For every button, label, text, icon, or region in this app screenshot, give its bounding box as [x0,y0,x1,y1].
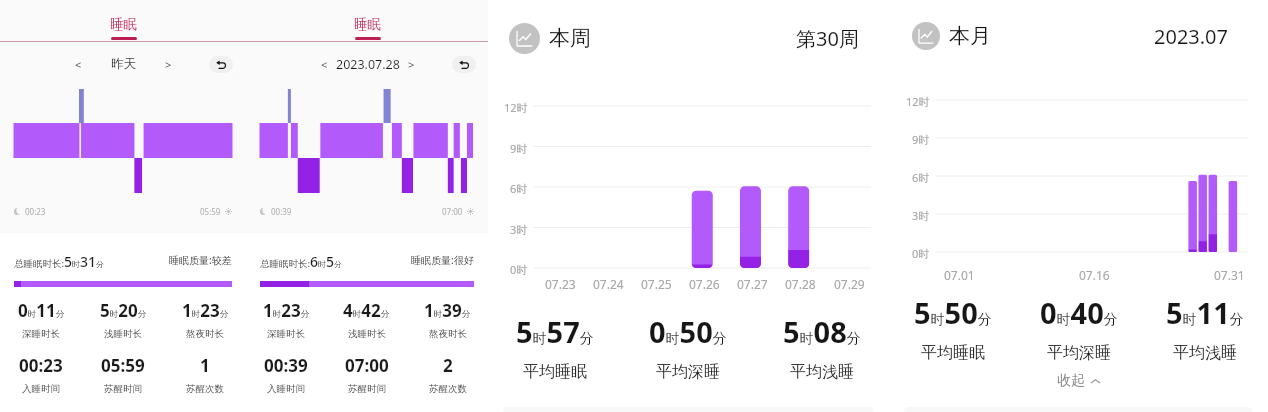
staticText: 深睡时长 [267,328,305,340]
staticText: 07.26 [689,276,720,290]
staticText: 睡眠 [354,16,381,33]
staticText: 5时57分 [516,312,594,351]
staticText: 本月 [949,23,991,49]
staticText: 收起 [1057,372,1085,390]
button[interactable]: Previous day [70,56,86,72]
staticText: 5时50分 [914,293,992,332]
button[interactable]: Next day [403,56,419,72]
staticText: 熬夜时长 [429,328,467,340]
staticText: 平均睡眠 [921,343,985,363]
staticText: 07.31 [1214,267,1245,281]
staticText: 睡眠 [110,16,137,33]
staticText: 苏醒时间 [104,383,142,395]
staticText: 睡眠质量:很好 [411,253,474,267]
staticText: 入睡时间 [22,383,60,395]
staticText: 07.24 [593,276,624,290]
staticText: 浅睡时长 [104,328,142,340]
staticText: 00:23 [19,354,63,377]
button[interactable]: 睡眠 [110,16,137,40]
staticText: 苏醒次数 [429,383,467,395]
staticText: 深睡时长 [22,328,60,340]
staticText: 12时 [504,100,528,115]
button[interactable]: 本周 [509,22,859,54]
staticText: 0时40分 [1040,293,1118,332]
staticText: 9时 [912,132,930,147]
staticText: 平均深睡 [656,362,720,382]
staticText: 0时11分 [18,299,65,322]
button[interactable]: 2023.07.28 [328,56,408,72]
staticText: 07:00 [442,206,463,217]
staticText: 平均深睡 [1047,343,1111,363]
staticText: 6时 [912,170,930,185]
staticText: 00:39 [264,354,308,377]
staticText: 07.23 [545,276,576,290]
staticText: 浅睡时长 [348,328,386,340]
staticText: 07:00 [345,354,389,377]
staticText: 5时08分 [783,312,861,351]
staticText: 07.29 [834,276,865,290]
staticText: 05:59 [101,354,145,377]
staticText: 07.01 [944,267,975,281]
staticText: 12时 [906,94,930,109]
staticText: 平均浅睡 [790,362,854,382]
staticText: 0时 [912,246,930,261]
staticText: 苏醒次数 [186,383,224,395]
staticText: 00:39 [271,206,292,217]
staticText: 6时 [510,181,528,196]
staticText: 平均浅睡 [1173,343,1237,363]
staticText: > [408,57,415,72]
staticText: 本周 [549,25,591,51]
staticText: 2023.07.28 [336,56,400,72]
staticText: 1时39分 [424,299,471,322]
staticText: 4时42分 [343,299,390,322]
staticText: 07.25 [641,276,672,290]
button[interactable]: Previous day [316,56,332,72]
staticText: 0时 [510,262,528,277]
staticText: 1时23分 [263,299,310,322]
staticText: 9时 [510,141,528,156]
button[interactable]: 睡眠 [354,16,381,40]
staticText: 1 [200,354,210,377]
staticText: 熬夜时长 [186,328,224,340]
staticText: < [75,57,82,72]
button[interactable]: Next day [160,56,176,72]
button[interactable]: 本月 [912,20,1228,52]
button[interactable]: 收起 [889,371,1268,391]
staticText: 昨天 [111,56,136,72]
staticText: 总睡眠时长:5时31分 [14,252,105,268]
staticText: 0时50分 [649,312,727,351]
button[interactable]: 昨天 [83,56,163,72]
staticText: 入睡时间 [267,383,305,395]
staticText: 2 [443,354,453,377]
staticText: < [321,57,328,72]
staticText: 07.16 [1079,267,1110,281]
staticText: 07.27 [737,276,768,290]
staticText: 3时 [912,208,930,223]
staticText: 1时23分 [182,299,229,322]
staticText: > [165,57,172,72]
staticText: 第30周 [796,25,859,52]
staticText: 总睡眠时长:6时5分 [260,252,343,268]
staticText: 平均睡眠 [523,362,587,382]
staticText: 2023.07 [1154,23,1228,50]
staticText: 苏醒时间 [348,383,386,395]
staticText: 05:59 [200,206,221,217]
staticText: 5时20分 [100,299,147,322]
staticText: 07.28 [785,276,816,290]
staticText: 3时 [510,222,528,237]
staticText: 5时11分 [1166,293,1244,332]
button[interactable]: Refresh [209,56,233,73]
staticText: 睡眠质量:较差 [169,253,232,267]
button[interactable]: Refresh [452,56,476,73]
staticText: 00:23 [25,206,46,217]
